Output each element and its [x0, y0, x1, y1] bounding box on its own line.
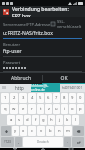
staticText: i: [64, 106, 66, 112]
button[interactable]: g: [40, 115, 47, 125]
staticText: Deutsch: [37, 140, 49, 144]
staticText: n: [58, 128, 61, 134]
button[interactable]: 8: [61, 93, 68, 103]
staticText: x: [22, 128, 25, 134]
staticText: 4: [31, 95, 34, 101]
button[interactable]: ,: [15, 137, 22, 147]
button[interactable]: b: [46, 126, 54, 136]
button[interactable]: h4019401001: [60, 84, 85, 92]
staticText: v: [40, 128, 43, 134]
button[interactable]: 5: [37, 93, 44, 103]
staticText: g: [42, 117, 45, 123]
button[interactable]: 0: [77, 93, 84, 103]
button[interactable]: OK: [43, 73, 85, 83]
button[interactable]: w: [10, 104, 18, 114]
button[interactable]: p: [77, 104, 84, 114]
button[interactable]: t: [37, 104, 44, 114]
staticText: hhhhrm@t-online.de: [31, 84, 60, 92]
button[interactable]: Startbildschirm: [29, 148, 57, 150]
staticText: Abbruch: [11, 75, 31, 82]
staticText: Servername/FTP-Adresse: [3, 22, 51, 27]
button[interactable]: Löschen: [73, 126, 84, 136]
staticText: Verbindung bearbeiten: FRZ.box: [12, 6, 82, 17]
button[interactable]: Menü: [0, 84, 8, 92]
button[interactable]: 1: [1, 93, 9, 103]
button[interactable]: 2: [10, 93, 18, 103]
button[interactable]: o: [69, 104, 76, 114]
button[interactable]: ?123: [1, 137, 14, 147]
staticText: d: [26, 117, 29, 123]
button[interactable]: i: [61, 104, 68, 114]
staticText: 0: [79, 95, 82, 101]
staticText: SSL-verschlüsselt: [57, 19, 82, 29]
staticText: e: [22, 106, 25, 112]
staticText: 3: [22, 95, 25, 101]
staticText: http: [15, 85, 24, 91]
button[interactable]: q: [1, 104, 9, 114]
button[interactable]: Eingabe: [72, 137, 84, 147]
button[interactable]: Abbruch: [0, 73, 42, 83]
staticText: w: [12, 106, 16, 112]
button[interactable]: n: [55, 126, 63, 136]
button[interactable]: ftp-user: [3, 48, 82, 57]
staticText: ?123: [4, 140, 11, 144]
button[interactable]: m: [64, 126, 72, 136]
staticText: k: [66, 117, 69, 123]
button[interactable]: u:FRITZ-NAS/fritz.box: [3, 30, 82, 39]
staticText: 1: [4, 95, 7, 101]
button[interactable]: 3: [19, 93, 27, 103]
button[interactable]: k: [64, 115, 71, 125]
staticText: Benutzer: [3, 42, 21, 47]
staticText: m: [66, 128, 70, 134]
button[interactable]: Zurück: [0, 148, 29, 150]
button[interactable]: f: [32, 115, 39, 125]
button[interactable]: x: [20, 126, 27, 136]
button[interactable]: hhhhrm@t-online.de: [31, 84, 60, 92]
staticText: f: [35, 117, 37, 123]
staticText: l: [75, 117, 77, 123]
staticText: a: [10, 117, 13, 123]
staticText: Passwort: [3, 60, 21, 65]
staticText: p: [79, 106, 82, 112]
staticText: q: [4, 106, 7, 112]
staticText: 9: [71, 95, 74, 101]
button[interactable]: Übersicht: [57, 148, 85, 150]
button[interactable]: 7: [53, 93, 60, 103]
button[interactable]: z: [45, 104, 52, 114]
staticText: s: [18, 117, 21, 123]
button[interactable]: v: [37, 126, 45, 136]
staticText: z: [48, 106, 50, 112]
staticText: 2: [13, 95, 16, 101]
button[interactable]: c: [28, 126, 36, 136]
button[interactable]: y: [12, 126, 19, 136]
staticText: h4019401001: [62, 86, 83, 90]
staticText: OK: [60, 75, 68, 82]
button[interactable]: l: [72, 115, 79, 125]
button[interactable]: SSL-verschlüsselt: [51, 19, 82, 29]
button[interactable]: Leertaste: [23, 137, 63, 147]
button[interactable]: 6: [45, 93, 52, 103]
button[interactable]: d: [24, 115, 31, 125]
button[interactable]: j: [56, 115, 63, 125]
button[interactable]: a: [7, 115, 15, 125]
staticText: 6: [47, 95, 50, 101]
staticText: ftp-user: [3, 48, 22, 55]
staticText: h: [50, 117, 53, 123]
button[interactable]: http: [8, 84, 31, 92]
button[interactable]: 9: [69, 93, 76, 103]
button[interactable]: 4: [28, 93, 36, 103]
staticText: ,: [18, 139, 20, 145]
button[interactable]: r: [28, 104, 36, 114]
staticText: u: [55, 106, 58, 112]
staticText: c: [31, 128, 34, 134]
staticText: b: [49, 128, 52, 134]
button[interactable]: e: [19, 104, 27, 114]
staticText: j: [59, 117, 61, 123]
button[interactable]: Umschalt: [1, 126, 11, 136]
staticText: .: [67, 139, 69, 145]
button[interactable]: u: [53, 104, 60, 114]
button[interactable]: h: [48, 115, 55, 125]
button[interactable]: s: [16, 115, 23, 125]
staticText: u:FRITZ-NAS/fritz.box: [3, 30, 53, 37]
